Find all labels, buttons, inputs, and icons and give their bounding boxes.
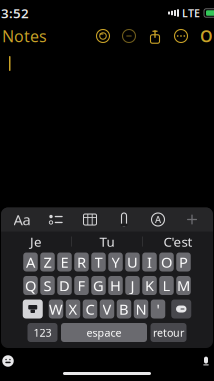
button[interactable]: B	[117, 299, 131, 318]
button[interactable]: C'est	[143, 229, 213, 254]
staticText: L	[162, 276, 170, 295]
button[interactable]: Delete	[171, 299, 191, 318]
button[interactable]: Text style	[9, 207, 35, 231]
button[interactable]: Shift	[23, 299, 43, 318]
button[interactable]: G	[91, 276, 106, 295]
staticText: U	[127, 252, 138, 272]
button[interactable]: Close toolbar	[179, 207, 205, 231]
staticText: O	[161, 252, 172, 272]
button[interactable]: Emoji keyboard	[0, 351, 19, 371]
button[interactable]: P	[176, 252, 191, 271]
staticText: Notes	[2, 25, 47, 47]
button[interactable]: OK	[194, 20, 214, 52]
button[interactable]: H	[108, 276, 123, 295]
button[interactable]: 123	[27, 323, 57, 342]
button[interactable]: S	[40, 276, 55, 295]
staticText: Q	[25, 276, 36, 295]
button[interactable]: I	[142, 252, 157, 271]
button[interactable]: N	[134, 299, 148, 318]
button[interactable]: espace	[61, 323, 147, 342]
button[interactable]: Markup	[145, 207, 171, 231]
staticText: V	[102, 299, 111, 319]
button[interactable]: D	[57, 276, 72, 295]
button[interactable]: E	[57, 252, 72, 271]
staticText: T	[94, 252, 102, 272]
staticText: R	[77, 252, 86, 272]
button[interactable]: Undo	[90, 23, 116, 49]
button[interactable]: Share	[142, 23, 168, 49]
staticText: OK	[200, 25, 214, 47]
button[interactable]: F	[74, 276, 89, 295]
staticText: '	[156, 299, 159, 319]
button[interactable]: Q	[23, 276, 38, 295]
button[interactable]: X	[66, 299, 80, 318]
staticText: H	[110, 276, 121, 295]
button[interactable]: Je	[1, 229, 71, 254]
staticText: Y	[111, 252, 119, 272]
button[interactable]: W	[49, 299, 63, 318]
staticText: J	[130, 276, 134, 295]
button[interactable]: J	[125, 276, 140, 295]
staticText: C'est	[163, 233, 192, 250]
button[interactable]: V	[100, 299, 114, 318]
staticText: W	[49, 299, 63, 319]
button[interactable]: O	[159, 252, 174, 271]
staticText: S	[43, 276, 51, 295]
staticText: Z	[43, 252, 51, 272]
button[interactable]: Redo	[116, 23, 142, 49]
button[interactable]: '	[151, 299, 165, 318]
button[interactable]: L	[159, 276, 174, 295]
staticText: C	[85, 299, 94, 319]
staticText: Tu	[99, 233, 114, 250]
staticText: Aa	[13, 210, 30, 229]
button[interactable]: K	[142, 276, 157, 295]
button[interactable]: Attachment	[111, 207, 137, 231]
button[interactable]: C	[83, 299, 97, 318]
button[interactable]: U	[125, 252, 140, 271]
staticText: M	[177, 276, 190, 295]
staticText: F	[77, 276, 85, 295]
staticText: Je	[30, 233, 42, 250]
button[interactable]: A	[23, 252, 38, 271]
button[interactable]: Y	[108, 252, 123, 271]
staticText: A	[155, 213, 161, 226]
staticText: A	[26, 252, 35, 272]
staticText: D	[59, 276, 70, 295]
button[interactable]: retour	[150, 323, 186, 342]
staticText: B	[119, 299, 129, 319]
staticText: N	[135, 299, 146, 319]
staticText: 123	[33, 325, 51, 340]
staticText: X	[68, 299, 77, 319]
button[interactable]: Z	[40, 252, 55, 271]
staticText: K	[145, 276, 154, 295]
button[interactable]: R	[74, 252, 89, 271]
staticText: LTE	[182, 6, 200, 20]
button[interactable]: T	[91, 252, 106, 271]
button[interactable]: Checklist	[43, 207, 69, 231]
staticText: retour	[153, 325, 184, 340]
staticText: P	[179, 252, 188, 272]
staticText: I	[147, 252, 152, 272]
staticText: E	[60, 252, 68, 272]
staticText: G	[93, 276, 104, 295]
button[interactable]: M	[176, 276, 191, 295]
button[interactable]: Dictation	[195, 351, 214, 371]
button[interactable]: Notes	[0, 20, 52, 52]
staticText: espace	[86, 325, 121, 340]
button[interactable]: Table	[77, 207, 103, 231]
button[interactable]: Tu	[72, 229, 142, 254]
staticText: 13:52	[0, 4, 29, 22]
button[interactable]: More options	[168, 23, 194, 49]
